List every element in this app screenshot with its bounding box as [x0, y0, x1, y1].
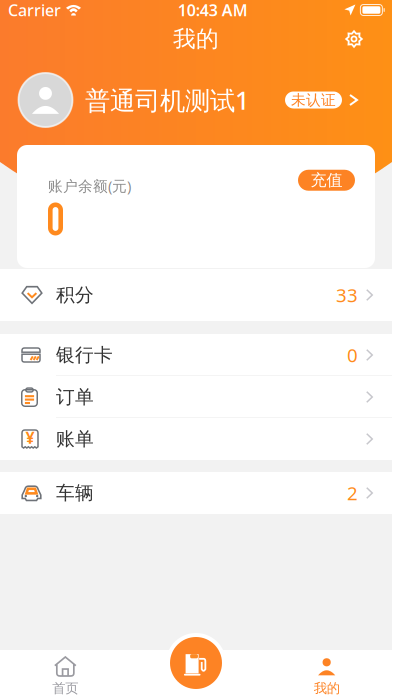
button[interactable]: 普通司机测试1: [0, 71, 392, 129]
staticText: 账单: [56, 427, 94, 450]
button[interactable]: 首页: [0, 650, 131, 696]
button[interactable]: 充值: [298, 170, 355, 191]
button[interactable]: Refuel: [131, 650, 261, 696]
button[interactable]: 车辆: [0, 472, 392, 514]
staticText: 普通司机测试1: [85, 83, 249, 117]
staticText: 车辆: [56, 481, 94, 504]
staticText: 我的: [314, 680, 340, 696]
button[interactable]: Refuel: [166, 633, 226, 693]
staticText: 账户余额(元): [48, 176, 131, 195]
staticText: 33: [336, 283, 358, 307]
staticText: Carrier: [8, 0, 61, 21]
button[interactable]: 积分: [0, 269, 392, 321]
staticText: 积分: [56, 283, 94, 306]
staticText: 我的: [173, 25, 219, 53]
staticText: 首页: [52, 680, 78, 696]
staticText: 银行卡: [56, 343, 113, 366]
button[interactable]: 银行卡: [0, 334, 392, 376]
staticText: 2: [347, 481, 358, 505]
staticText: 0: [347, 343, 358, 367]
staticText: 10:43 AM: [178, 0, 248, 21]
staticText: ¥: [25, 427, 34, 448]
staticText: 未认证: [291, 91, 336, 109]
button[interactable]: 我的: [261, 650, 392, 696]
staticText: 充值: [310, 170, 342, 190]
button[interactable]: Settings: [337, 22, 371, 56]
button[interactable]: 订单: [0, 376, 392, 418]
staticText: 订单: [56, 385, 94, 408]
button[interactable]: ¥: [0, 418, 392, 460]
